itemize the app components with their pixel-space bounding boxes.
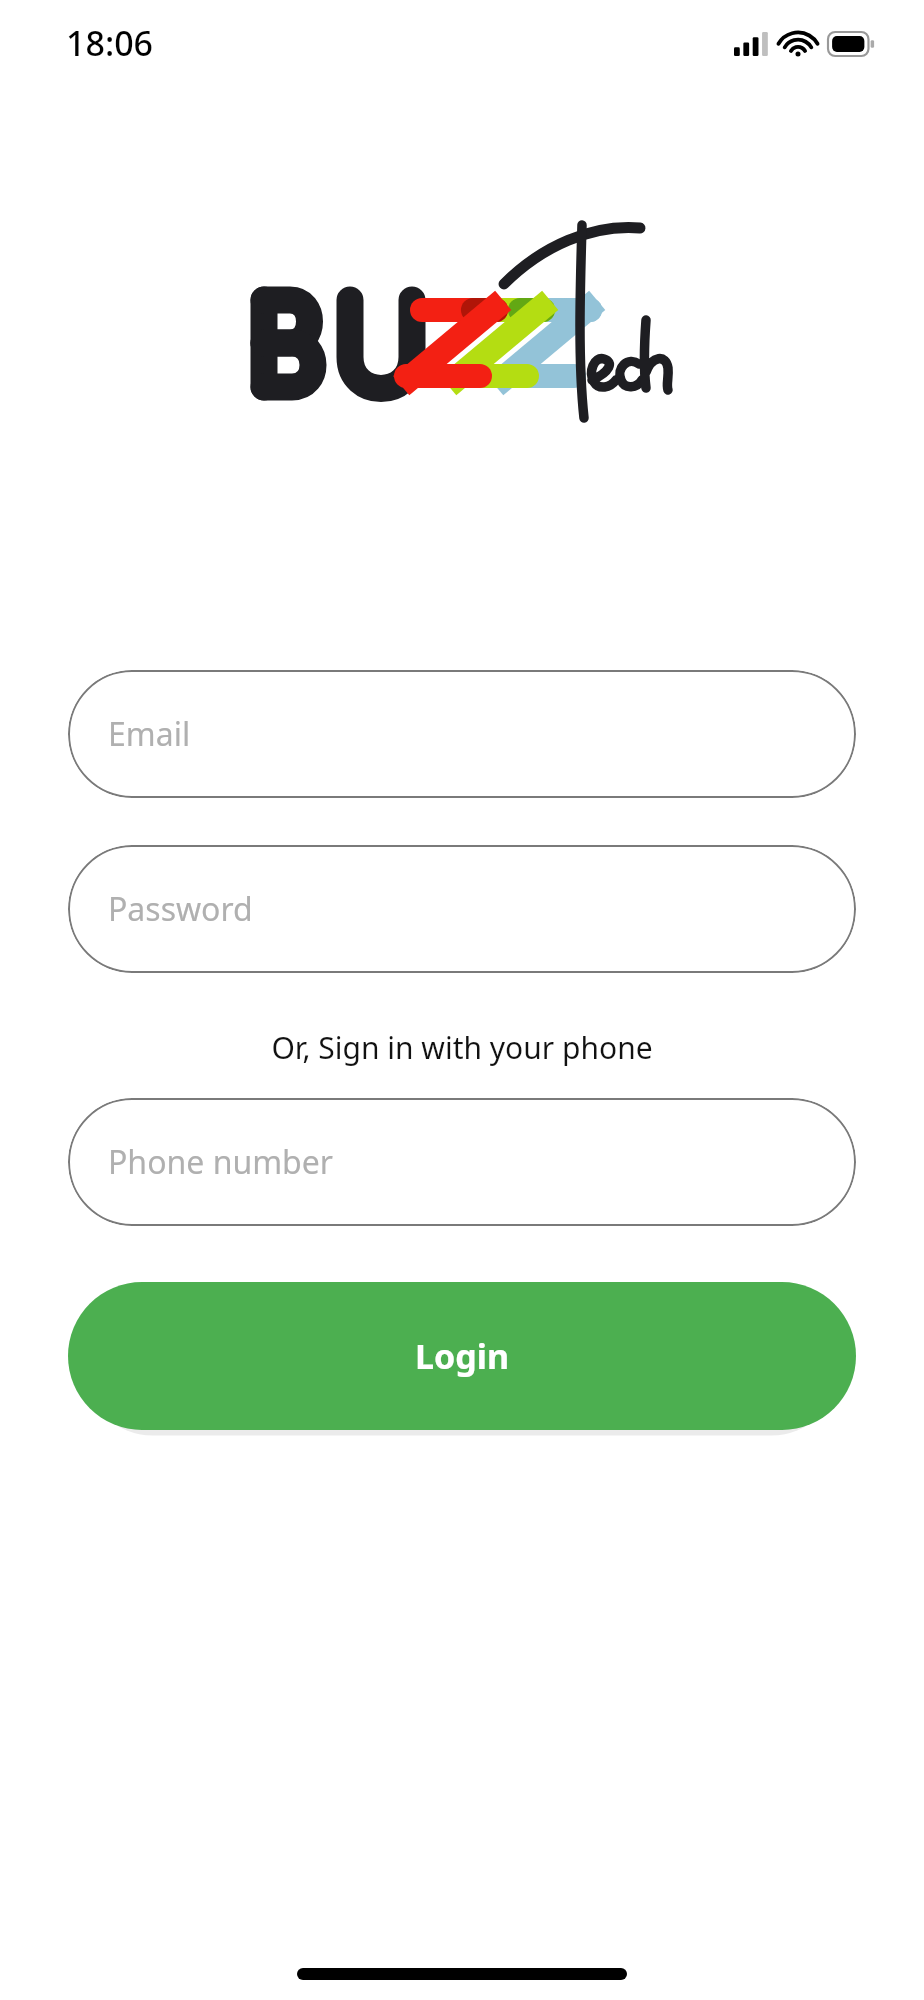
staticText: Password <box>108 887 253 931</box>
button[interactable]: Phone number <box>68 1098 856 1226</box>
button[interactable]: Email <box>68 670 856 798</box>
button[interactable]: Password <box>68 845 856 973</box>
staticText: Phone number <box>108 1140 334 1184</box>
staticText: 18:06 <box>66 20 154 66</box>
staticText: Login <box>415 1333 510 1379</box>
staticText: Or, Sign in with your phone <box>68 1027 856 1068</box>
other: BuzzTech logo <box>242 222 682 437</box>
staticText: Email <box>108 712 191 756</box>
button[interactable]: Login <box>68 1282 856 1430</box>
